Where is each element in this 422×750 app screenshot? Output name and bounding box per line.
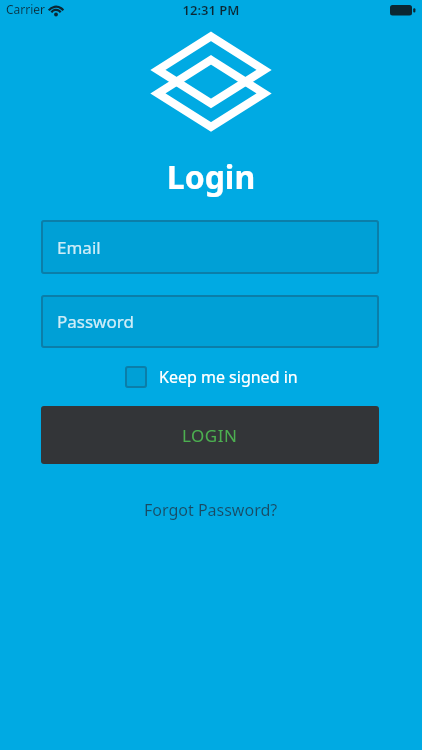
staticText: Email xyxy=(57,236,101,259)
button[interactable]: Password xyxy=(41,295,379,348)
staticText: Password xyxy=(57,310,134,333)
button[interactable]: Email xyxy=(41,220,379,274)
button[interactable]: LOGIN xyxy=(41,406,379,464)
staticText: LOGIN xyxy=(182,424,238,447)
staticText: 12:31 PM xyxy=(0,1,422,19)
button[interactable]: Keep me signed in xyxy=(125,366,298,388)
staticText: Login xyxy=(0,155,422,199)
staticText: Carrier xyxy=(6,1,46,17)
button[interactable]: Forgot Password? xyxy=(144,499,278,521)
staticText: Keep me signed in xyxy=(159,366,298,388)
